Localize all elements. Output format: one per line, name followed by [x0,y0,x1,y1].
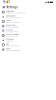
button[interactable]: Application [0,10,56,14]
button[interactable]: Help [0,43,56,47]
button[interactable]: Notifications [0,14,56,19]
button[interactable]: Storage [0,28,56,33]
button[interactable]: About [0,47,56,52]
staticText: Application [6,10,14,12]
button[interactable]: Privacy [0,19,56,24]
button[interactable]: Back [2,6,5,9]
staticText: Preferences and behavior [6,12,26,14]
staticText: Manage local data [6,31,18,33]
staticText: Alerts, sounds, badges [6,17,22,19]
staticText: Settings [6,5,17,9]
button[interactable]: Appearance [0,24,56,28]
staticText: Storage [6,29,13,31]
staticText: Privacy [6,20,12,21]
staticText: Appearance [6,24,16,26]
staticText: Notifications [6,15,16,17]
staticText: Help [6,43,9,45]
staticText: 9:41 [3,0,10,4]
staticText: Linked services [6,36,18,37]
staticText: Version and legal info [6,50,20,51]
staticText: About [6,48,11,50]
staticText: Language [6,38,14,40]
button[interactable]: Language [0,38,56,43]
staticText: Connected Apps [6,34,19,35]
staticText: Guides and support [6,45,20,47]
button[interactable]: Connected Apps [0,33,56,38]
staticText: Theme and text size [6,26,19,28]
staticText: English (US) [6,40,13,42]
staticText: Data and permissions [6,22,21,23]
